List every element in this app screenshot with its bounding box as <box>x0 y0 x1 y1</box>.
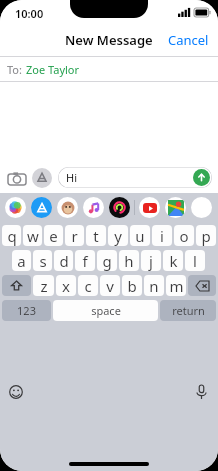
staticText: j <box>149 251 153 271</box>
button[interactable]: App Store <box>31 197 52 218</box>
staticText: l <box>193 251 197 271</box>
button[interactable]: Send <box>193 169 210 186</box>
button[interactable]: x <box>56 275 76 296</box>
staticText: u <box>135 226 145 246</box>
staticText: i <box>160 226 164 246</box>
staticText: return <box>172 303 205 318</box>
button[interactable]: o <box>174 225 194 246</box>
button[interactable]: More <box>191 197 212 218</box>
button[interactable]: r <box>65 225 84 246</box>
button[interactable]: p <box>196 225 216 246</box>
button[interactable]: Music <box>83 197 104 218</box>
button[interactable]: e <box>44 225 63 246</box>
staticText: h <box>124 251 134 271</box>
button[interactable]: To: <box>0 57 218 81</box>
button[interactable]: b <box>122 275 142 296</box>
staticText: 123 <box>17 303 36 318</box>
staticText: c <box>84 276 92 296</box>
button[interactable]: n <box>144 275 164 296</box>
staticText: q <box>7 226 17 246</box>
button[interactable]: Hi <box>58 167 212 188</box>
button[interactable]: c <box>78 275 98 296</box>
staticText: z <box>40 276 48 296</box>
staticText: m <box>169 276 184 296</box>
button[interactable]: 123 <box>2 300 51 321</box>
button[interactable]: space <box>53 300 158 321</box>
button[interactable]: z <box>33 275 54 296</box>
staticText: e <box>49 226 58 246</box>
button[interactable]: i <box>152 225 172 246</box>
staticText: space <box>91 303 121 318</box>
button[interactable]: q <box>2 225 21 246</box>
button[interactable]: Memoji <box>57 197 78 218</box>
button[interactable]: Dictate <box>191 382 211 402</box>
button[interactable]: k <box>163 250 183 271</box>
staticText: Hi <box>66 170 77 185</box>
button[interactable]: Backspace <box>188 275 216 296</box>
button[interactable]: a <box>12 250 31 271</box>
button[interactable]: v <box>100 275 120 296</box>
staticText: a <box>17 251 26 271</box>
staticText: o <box>179 226 189 246</box>
button[interactable]: Fitness <box>109 197 130 218</box>
button[interactable]: Photos <box>5 197 26 218</box>
staticText: n <box>149 276 159 296</box>
staticText: 10:00 <box>15 6 44 21</box>
button[interactable]: App Store <box>32 168 52 188</box>
button[interactable]: Maps <box>165 197 186 218</box>
staticText: w <box>27 226 39 246</box>
staticText: Cancel <box>168 31 209 49</box>
staticText: t <box>93 226 99 246</box>
staticText: d <box>59 251 69 271</box>
staticText: Zoe Taylor <box>26 62 80 77</box>
button[interactable]: l <box>185 250 205 271</box>
button[interactable]: return <box>160 300 216 321</box>
staticText: New Message <box>65 31 153 49</box>
staticText: k <box>169 251 178 271</box>
button[interactable]: h <box>119 250 139 271</box>
staticText: s <box>39 251 47 271</box>
button[interactable]: y <box>108 225 128 246</box>
staticText: v <box>106 276 114 296</box>
staticText: f <box>82 251 88 271</box>
staticText: b <box>127 276 137 296</box>
button[interactable]: Shift <box>2 275 31 296</box>
staticText: p <box>201 226 211 246</box>
button[interactable]: Emoji <box>6 382 26 402</box>
button[interactable]: w <box>23 225 42 246</box>
staticText: y <box>114 226 122 246</box>
button[interactable]: YouTube <box>139 197 160 218</box>
button[interactable]: f <box>75 250 95 271</box>
button[interactable]: d <box>54 250 73 271</box>
button[interactable]: j <box>141 250 161 271</box>
button[interactable]: t <box>86 225 106 246</box>
staticText: g <box>102 251 112 271</box>
button[interactable]: m <box>166 275 186 296</box>
button[interactable]: Camera <box>6 167 28 189</box>
button[interactable]: u <box>130 225 150 246</box>
staticText: x <box>62 276 70 296</box>
staticText: r <box>71 226 78 246</box>
button[interactable]: g <box>97 250 117 271</box>
button[interactable]: s <box>33 250 52 271</box>
staticText: To: <box>7 62 22 77</box>
button[interactable]: Cancel <box>159 25 218 55</box>
